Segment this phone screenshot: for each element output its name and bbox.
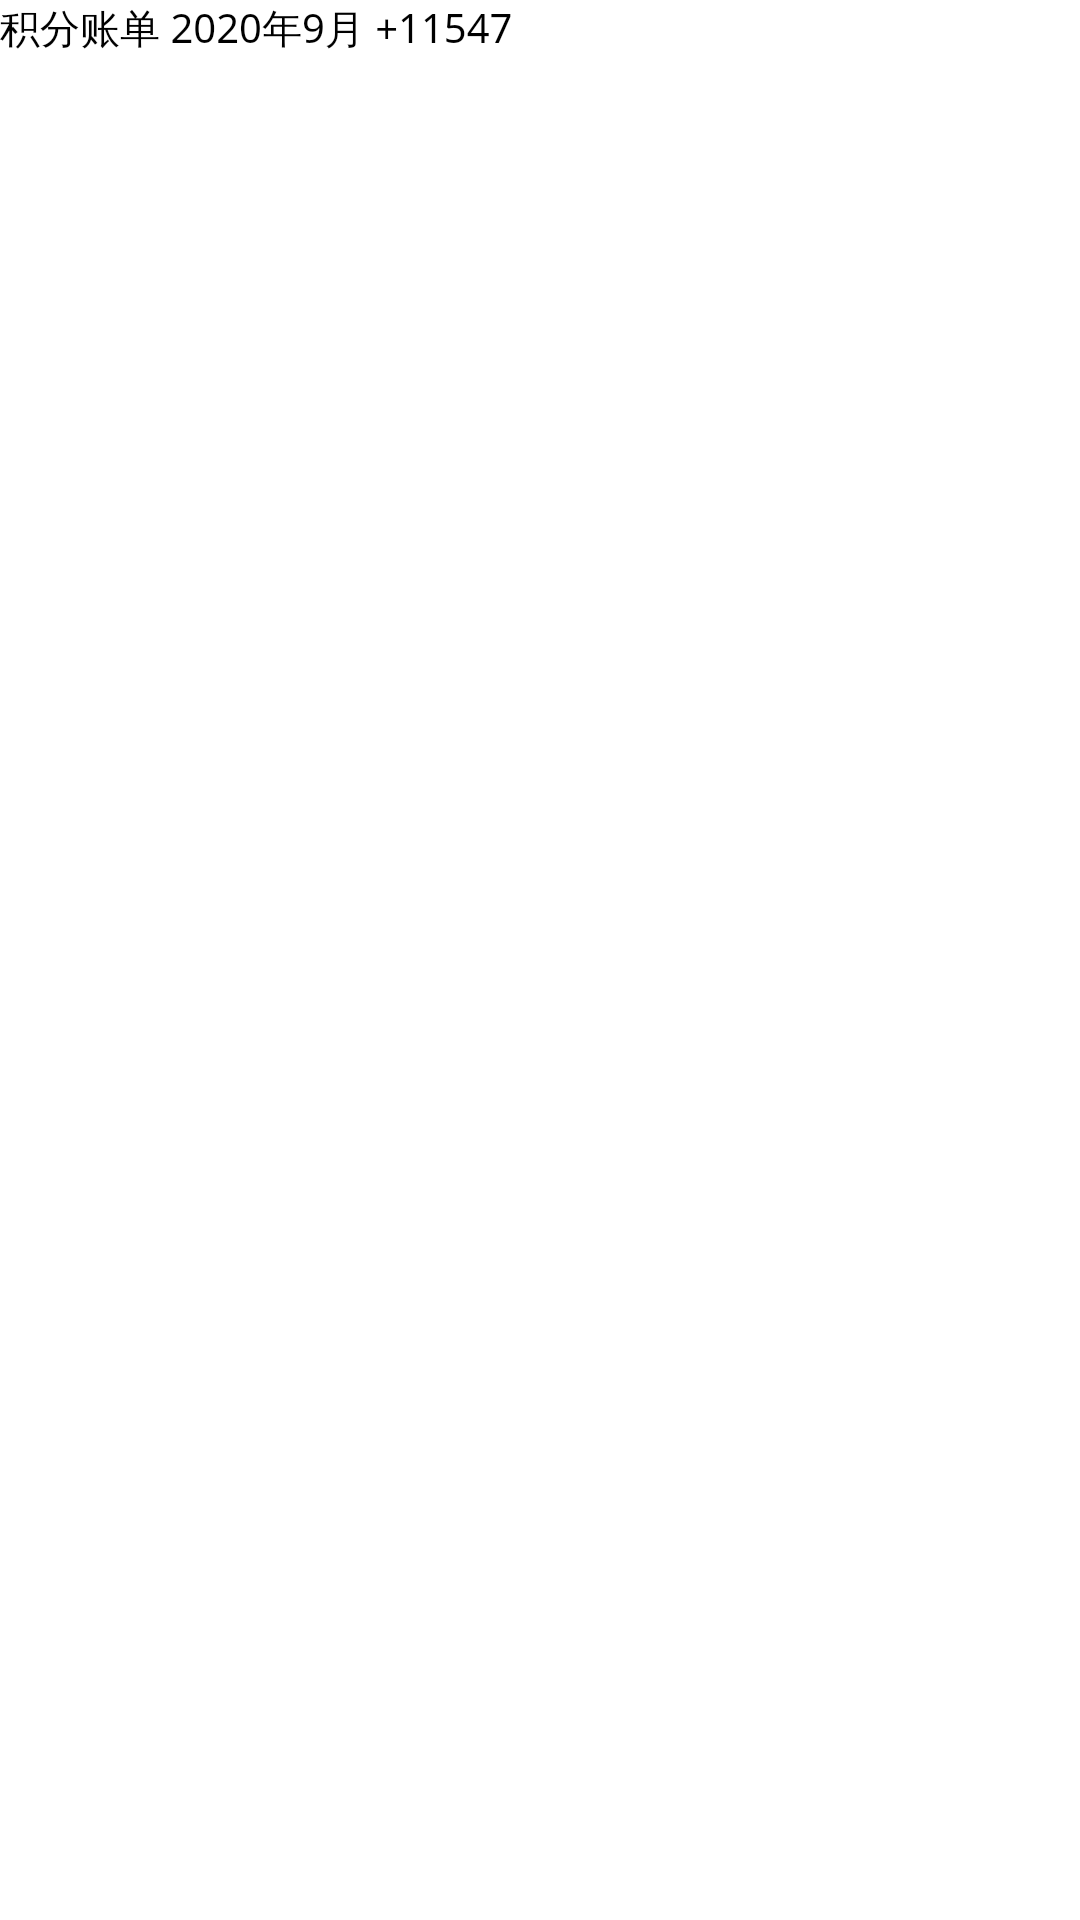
staticText: 积分账单 2020年9月 +11547 <box>0 0 513 55</box>
